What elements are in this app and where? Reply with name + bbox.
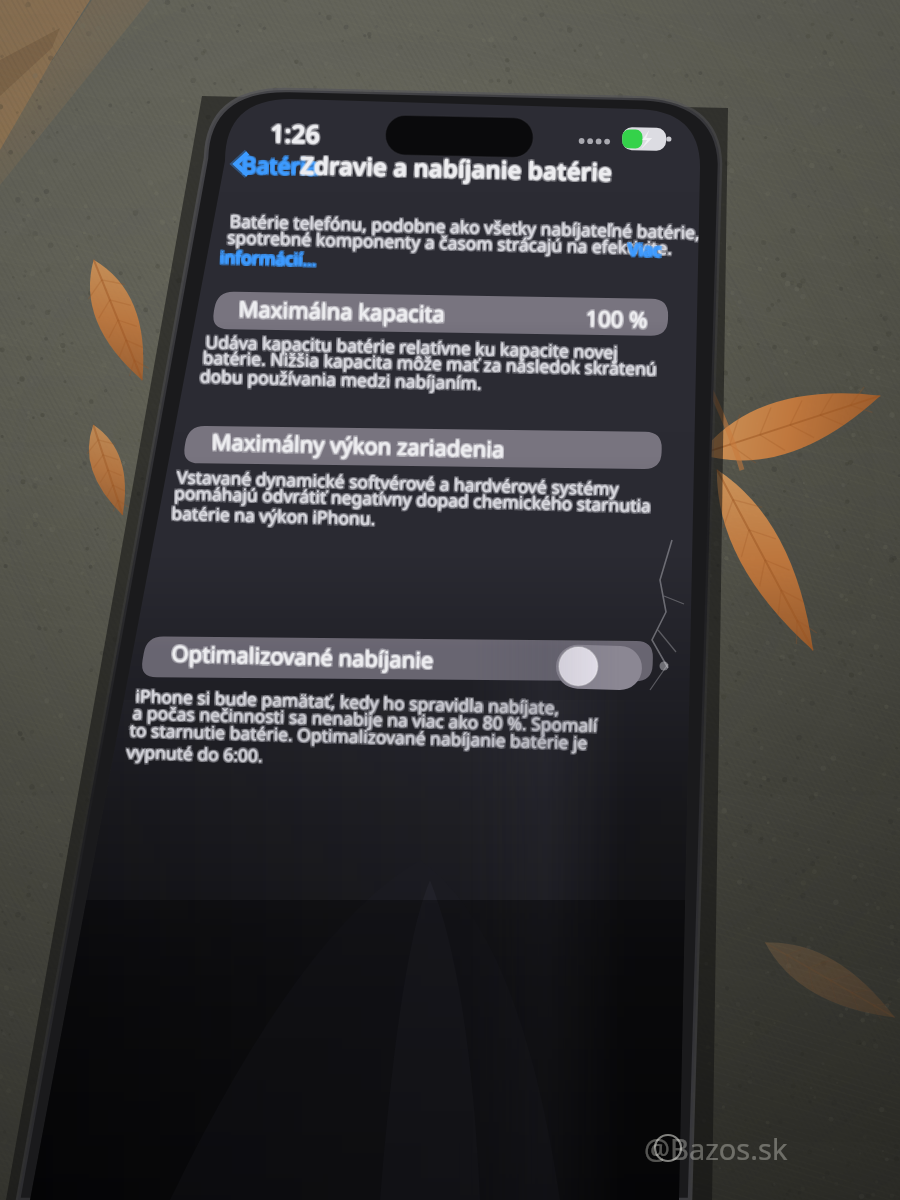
button[interactable]: Battery health settings photo [0,0,900,1200]
other: Battery health settings photo [0,0,900,1200]
